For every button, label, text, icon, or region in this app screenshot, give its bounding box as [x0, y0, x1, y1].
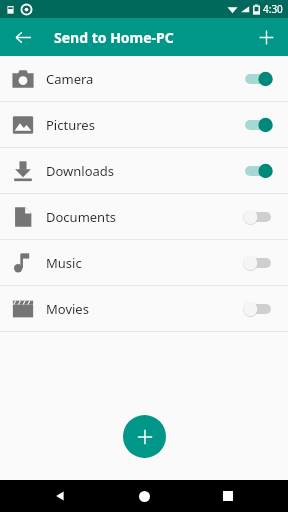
staticText: Send to Home-PC: [54, 28, 174, 47]
staticText: 4:30: [263, 2, 283, 16]
staticText: Pictures: [46, 116, 240, 134]
staticText: Downloads: [46, 162, 240, 180]
button[interactable]: Recent apps: [204, 480, 252, 512]
button[interactable]: On: [240, 113, 276, 137]
button[interactable]: Documents: [0, 194, 288, 239]
button[interactable]: Movies: [0, 286, 288, 331]
button[interactable]: Camera: [0, 56, 288, 101]
button[interactable]: Back: [6, 20, 40, 54]
button[interactable]: Off: [240, 205, 276, 229]
staticText: Camera: [46, 70, 240, 88]
staticText: Music: [46, 254, 240, 272]
button[interactable]: On: [240, 159, 276, 183]
button[interactable]: Add: [250, 21, 282, 53]
button[interactable]: Off: [240, 297, 276, 321]
button[interactable]: Music: [0, 240, 288, 285]
button[interactable]: Off: [240, 251, 276, 275]
staticText: Movies: [46, 300, 240, 318]
button[interactable]: Add item: [123, 415, 166, 458]
button[interactable]: Back: [36, 480, 84, 512]
button[interactable]: On: [240, 67, 276, 91]
button[interactable]: Home: [120, 480, 168, 512]
button[interactable]: Downloads: [0, 148, 288, 193]
button[interactable]: Pictures: [0, 102, 288, 147]
staticText: Documents: [46, 208, 240, 226]
